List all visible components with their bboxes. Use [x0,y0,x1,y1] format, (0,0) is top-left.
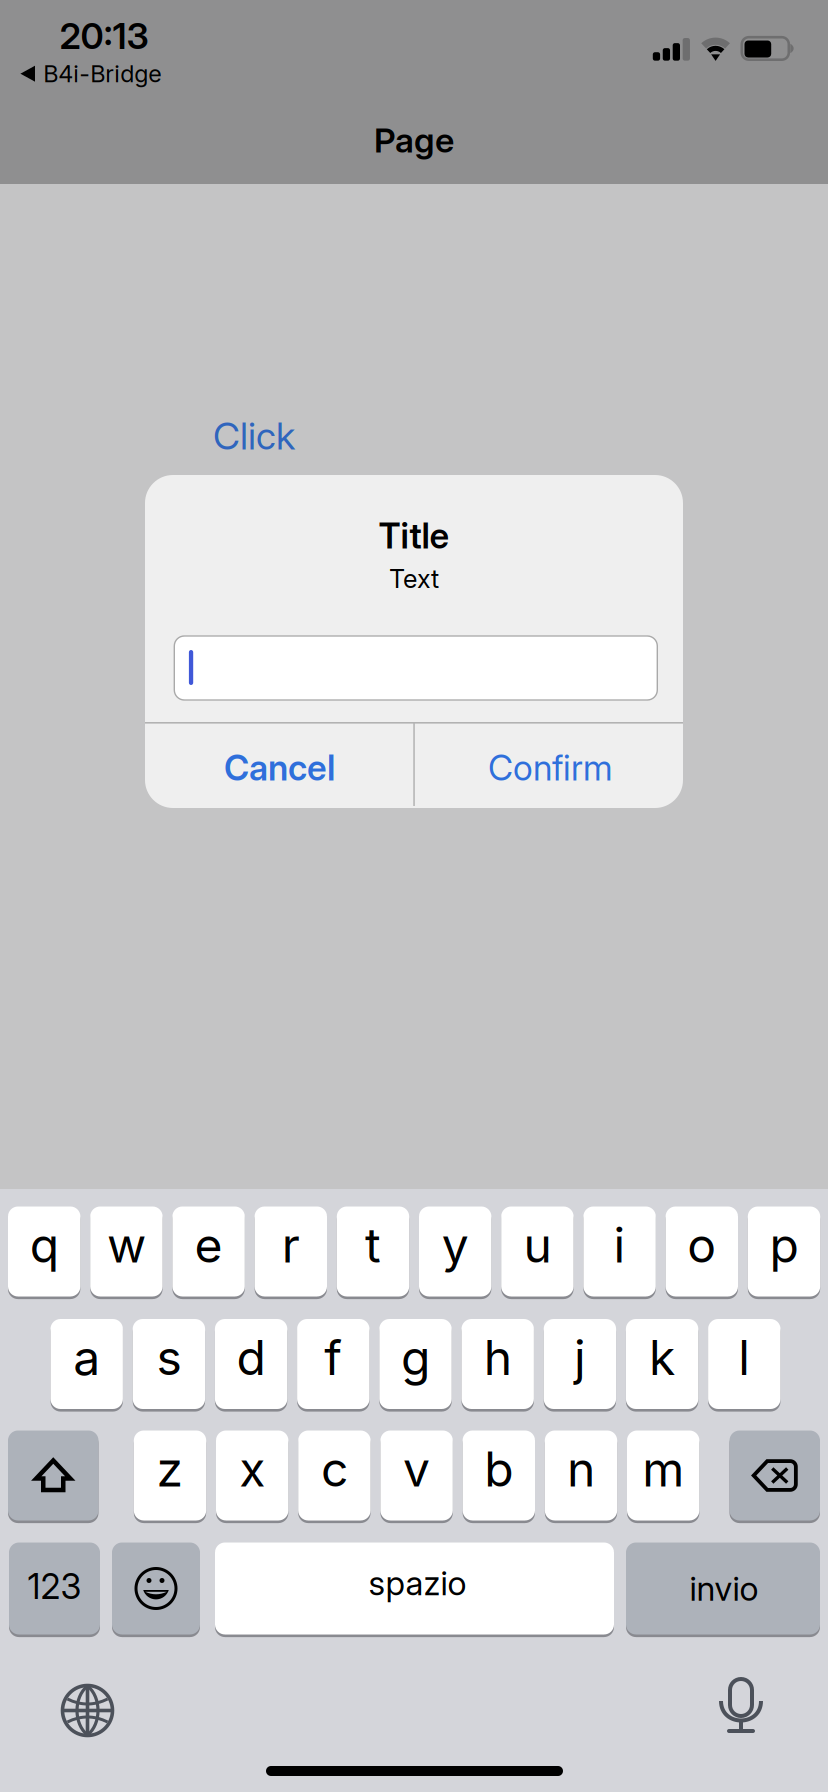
button[interactable]: o [666,1204,738,1298]
staticText: e [195,1216,223,1274]
button[interactable]: c [298,1428,371,1522]
staticText: p [769,1216,798,1274]
button[interactable]: z [134,1428,206,1522]
button[interactable]: i [583,1204,656,1298]
staticText: f [324,1328,342,1387]
staticText: k [649,1328,675,1387]
staticText: b [484,1440,513,1498]
staticText: h [484,1328,512,1387]
button[interactable]: Next keyboard [61,1684,114,1737]
button[interactable]: g [379,1317,452,1411]
staticText: t [365,1216,381,1274]
button[interactable]: Emoji [112,1540,200,1636]
button[interactable]: e [172,1204,245,1298]
button[interactable]: k [626,1317,698,1411]
button[interactable]: Delete [729,1428,820,1522]
button[interactable]: Click [213,415,295,457]
button[interactable]: B4i-Bridge [19,61,161,87]
staticText: z [156,1440,183,1498]
button[interactable]: Shift [8,1428,98,1522]
staticText: n [567,1440,595,1498]
staticText: u [523,1216,551,1274]
button[interactable]: Dictation [714,1679,768,1737]
button[interactable]: r [255,1204,327,1298]
staticText: s [156,1328,181,1387]
button[interactable]: f [297,1317,369,1411]
button[interactable]: h [461,1317,534,1411]
staticText: invio [689,1568,758,1609]
staticText: Click [213,413,295,459]
button[interactable]: b [463,1428,535,1522]
button[interactable]: spazio [215,1540,614,1636]
button[interactable]: u [501,1204,574,1298]
staticText: 20:13 [60,14,149,58]
button[interactable]: t [337,1204,409,1298]
staticText: m [642,1440,684,1498]
staticText: x [239,1440,265,1498]
staticText: Page [374,119,454,161]
button[interactable]: s [133,1317,205,1411]
button[interactable]: l [708,1317,780,1411]
staticText: w [107,1216,146,1274]
button[interactable]: 123 [9,1540,100,1636]
staticText: g [401,1328,430,1387]
button[interactable]: x [216,1428,288,1522]
staticText: Text [389,563,439,594]
staticText: Confirm [488,747,613,789]
staticText: d [237,1328,266,1387]
button[interactable]: Cancel [145,722,414,808]
button[interactable]: w [90,1204,163,1298]
button[interactable]: v [380,1428,453,1522]
button[interactable]: m [627,1428,699,1522]
staticText: y [442,1216,469,1274]
staticText: Cancel [224,747,335,789]
staticText: i [614,1216,626,1274]
button[interactable]: a [50,1317,123,1411]
staticText: 123 [27,1566,81,1607]
button[interactable]: d [215,1317,287,1411]
staticText: j [574,1328,586,1387]
staticText: r [282,1216,300,1274]
staticText: Title [378,515,449,557]
staticText: spazio [368,1563,466,1603]
button[interactable]: y [419,1204,491,1298]
staticText: v [403,1440,430,1498]
button[interactable]: n [545,1428,617,1522]
staticText: B4i-Bridge [43,59,161,88]
staticText: l [738,1328,750,1387]
staticText: o [687,1216,716,1274]
staticText: a [73,1328,100,1387]
button[interactable]: invio [626,1540,820,1636]
staticText: c [321,1440,348,1498]
staticText: q [30,1216,59,1274]
button[interactable]: j [544,1317,616,1411]
button[interactable]: q [8,1204,80,1298]
button[interactable]: p [748,1204,820,1298]
button[interactable]: Confirm [414,722,683,808]
